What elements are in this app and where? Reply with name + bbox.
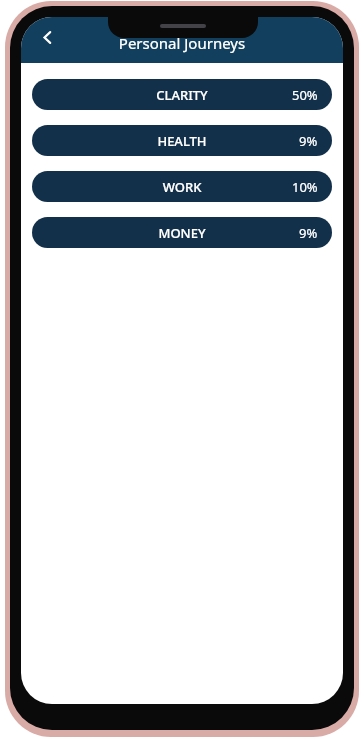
staticText: WORK bbox=[32, 178, 332, 196]
staticText: 9% bbox=[299, 224, 318, 242]
staticText: 9% bbox=[299, 132, 318, 150]
button[interactable]: CLARITY bbox=[32, 79, 332, 110]
button[interactable]: WORK bbox=[32, 171, 332, 202]
button[interactable]: Back bbox=[30, 20, 64, 54]
staticText: MONEY bbox=[32, 224, 332, 242]
staticText: HEALTH bbox=[32, 132, 332, 150]
staticText: CLARITY bbox=[32, 86, 332, 104]
staticText: 10% bbox=[292, 178, 318, 196]
staticText: Personal Journeys bbox=[21, 33, 343, 53]
button[interactable]: HEALTH bbox=[32, 125, 332, 156]
button[interactable]: MONEY bbox=[32, 217, 332, 248]
staticText: 50% bbox=[292, 86, 318, 104]
